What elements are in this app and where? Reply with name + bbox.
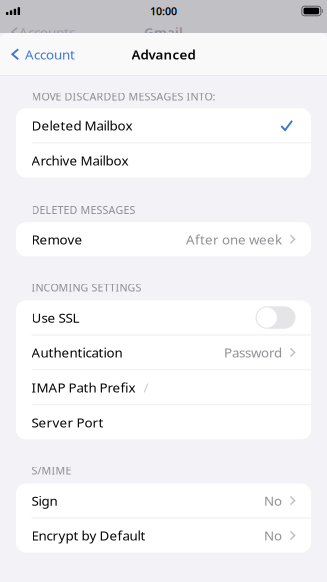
staticText: No: [264, 527, 282, 544]
staticText: IMAP Path Prefix: [31, 378, 135, 396]
staticText: Gmail: [144, 23, 183, 41]
staticText: After one week: [186, 230, 282, 248]
staticText: Remove: [31, 230, 82, 248]
staticText: 10:00: [150, 4, 177, 18]
button[interactable]: Server Port: [16, 405, 311, 439]
staticText: MOVE DISCARDED MESSAGES INTO:: [31, 89, 215, 103]
button[interactable]: IMAP Path Prefix: [16, 370, 311, 404]
staticText: Encrypt by Default: [31, 527, 145, 544]
staticText: Sign: [31, 492, 57, 509]
staticText: Use SSL: [31, 309, 79, 326]
staticText: Account: [25, 45, 75, 63]
staticText: Authentication: [31, 344, 122, 361]
staticText: INCOMING SETTINGS: [31, 280, 141, 294]
button[interactable]: Authentication: [16, 335, 311, 370]
button[interactable]: Archive Mailbox: [16, 143, 311, 177]
staticText: Advanced: [131, 45, 195, 63]
button[interactable]: Encrypt by Default: [16, 518, 311, 553]
button[interactable]: Sign: [16, 483, 311, 518]
staticText: Server Port: [31, 413, 103, 431]
staticText: Password: [224, 344, 282, 361]
staticText: S/MIME: [31, 463, 71, 477]
button[interactable]: Remove: [16, 222, 311, 256]
button[interactable]: Account: [0, 33, 85, 75]
staticText: No: [264, 492, 282, 509]
button[interactable]: Deleted Mailbox: [16, 108, 311, 143]
staticText: Archive Mailbox: [31, 151, 128, 169]
staticText: Accounts: [19, 23, 75, 41]
staticText: /: [143, 378, 148, 396]
staticText: DELETED MESSAGES: [31, 203, 135, 217]
staticText: Deleted Mailbox: [31, 117, 132, 134]
button[interactable]: Use SSL: [16, 300, 311, 335]
